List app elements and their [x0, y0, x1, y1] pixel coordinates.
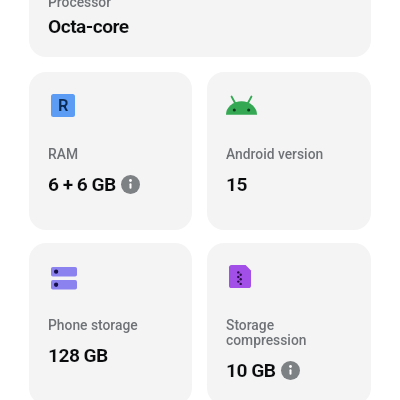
button[interactable]: Phone storage: [29, 243, 192, 400]
staticText: Processor: [48, 0, 112, 10]
staticText: RAM: [48, 147, 78, 162]
staticText: Phone storage: [48, 318, 138, 333]
other: Storage compression info: [281, 361, 300, 380]
button[interactable]: Storage compression: [207, 243, 371, 400]
button[interactable]: Android version: [207, 72, 371, 230]
other: RAM info: [121, 175, 140, 194]
staticText: 10 GB: [226, 359, 276, 382]
staticText: 128 GB: [48, 344, 108, 367]
staticText: Octa-core: [48, 15, 129, 38]
button[interactable]: R: [29, 72, 192, 230]
button[interactable]: Processor: [29, 0, 371, 57]
staticText: Android version: [226, 147, 324, 162]
staticText: Storage compression: [226, 318, 307, 348]
staticText: R: [58, 96, 69, 115]
staticText: 6 + 6 GB: [48, 173, 116, 196]
staticText: 15: [226, 173, 247, 196]
